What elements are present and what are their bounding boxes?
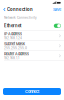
button[interactable]: Subnet Mask <box>0 41 64 51</box>
staticText: IP Address <box>4 32 22 36</box>
staticText: Network Connectivity <box>4 16 37 20</box>
staticText: 192.168.1.1 <box>4 56 19 60</box>
button[interactable]: Ethernet <box>0 21 64 31</box>
button[interactable]: Connect <box>3 88 61 95</box>
button[interactable]: IP Address <box>0 31 64 41</box>
staticText: Router Address <box>4 52 29 56</box>
button[interactable]: Back <box>0 5 7 13</box>
staticText: Ethernet <box>4 23 21 28</box>
staticText: Connection <box>7 7 33 12</box>
button[interactable]: Router Address <box>0 51 64 61</box>
staticText: Subnet Mask <box>4 42 25 46</box>
staticText: 192.168.1.24 <box>4 36 22 40</box>
staticText: 255.255.255.0 <box>4 46 27 50</box>
button[interactable]: Save <box>50 5 64 13</box>
staticText: Connect <box>25 89 39 94</box>
staticText: Save <box>53 7 61 12</box>
